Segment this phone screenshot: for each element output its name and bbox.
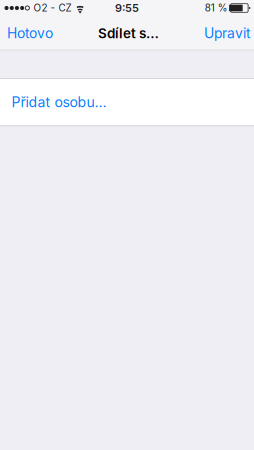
staticText: Hotovo xyxy=(7,25,53,42)
staticText: 9:55 xyxy=(115,1,139,15)
staticText: O2 - CZ xyxy=(33,2,71,14)
button[interactable]: Přidat osobu… xyxy=(0,79,254,125)
staticText: 81 % xyxy=(205,2,228,14)
button[interactable]: Upravit xyxy=(197,17,254,50)
staticText: Upravit xyxy=(204,25,251,42)
staticText: Přidat osobu… xyxy=(11,94,106,111)
button[interactable]: Hotovo xyxy=(0,17,60,50)
staticText: Sdílet s… xyxy=(98,25,159,41)
